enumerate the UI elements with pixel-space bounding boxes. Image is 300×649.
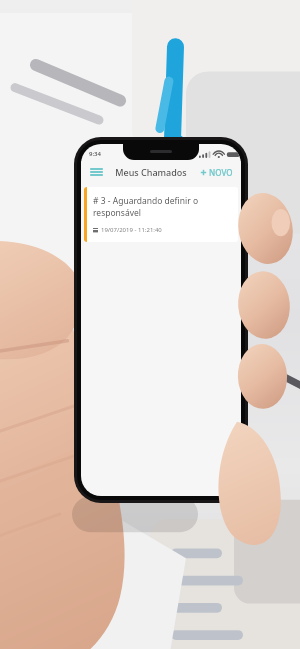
button[interactable]: # 3 - Aguardando definir o responsável (84, 187, 238, 242)
button[interactable]: NOVO (198, 164, 235, 181)
staticText: NOVO (209, 167, 233, 178)
staticText: # 3 - Aguardando definir o responsável (93, 195, 231, 219)
button[interactable]: Menu (87, 163, 105, 181)
staticText: Meus Chamados (115, 166, 187, 178)
staticText: 19/07/2019 - 11:21:40 (101, 226, 162, 234)
staticText: 9:34 (89, 150, 101, 158)
